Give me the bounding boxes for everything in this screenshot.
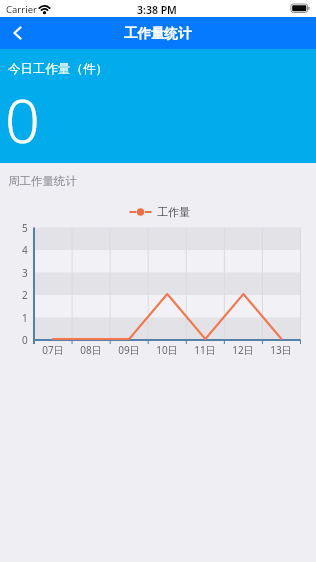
staticText: 工作量 (157, 205, 190, 219)
staticText: 13日 (270, 343, 292, 357)
staticText: 0 (5, 78, 40, 161)
staticText: 1 (22, 311, 28, 325)
staticText: 10日 (156, 343, 178, 357)
staticText: 周工作量统计 (8, 174, 77, 188)
staticText: 11日 (194, 343, 216, 357)
staticText: 工作量统计 (124, 25, 192, 42)
staticText: 4 (22, 243, 28, 257)
staticText: 08日 (80, 343, 102, 357)
staticText: 2 (22, 288, 28, 302)
staticText: 今日工作量（件） (8, 61, 108, 77)
button[interactable] (2, 17, 32, 49)
staticText: 5 (22, 221, 28, 235)
staticText: 12日 (232, 343, 254, 357)
button[interactable]: 工作量 (129, 204, 190, 220)
staticText: 0 (22, 333, 28, 347)
staticText: 3 (22, 266, 28, 280)
staticText: 09日 (118, 343, 140, 357)
staticText: 3:38 PM (137, 3, 177, 17)
staticText: 07日 (42, 343, 64, 357)
staticText: Carrier (6, 3, 37, 16)
